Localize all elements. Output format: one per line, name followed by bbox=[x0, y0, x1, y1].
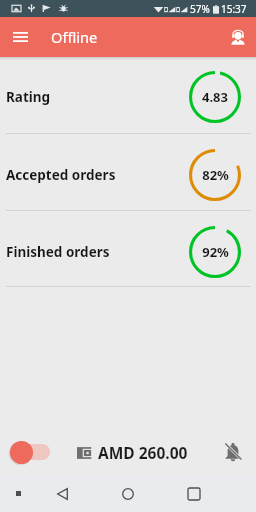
button[interactable]: Accepted orders bbox=[0, 136, 256, 213]
button[interactable]: Recents bbox=[181, 481, 207, 507]
button[interactable]: Home bbox=[115, 481, 141, 507]
staticText: 92% bbox=[202, 243, 229, 261]
staticText: 15:37 bbox=[221, 2, 247, 16]
button[interactable]: Support bbox=[223, 22, 253, 52]
staticText: 4.83 bbox=[202, 88, 228, 106]
button[interactable]: Rating bbox=[0, 58, 256, 135]
button[interactable]: Notifications off bbox=[221, 440, 245, 464]
staticText: 82% bbox=[202, 166, 229, 184]
staticText: Offline bbox=[51, 27, 98, 47]
staticText: 57% bbox=[190, 2, 210, 16]
staticText: Rating bbox=[6, 88, 51, 106]
button[interactable]: Go online bbox=[9, 440, 50, 464]
button[interactable]: Finished orders bbox=[0, 213, 256, 290]
staticText: Accepted orders bbox=[6, 166, 116, 184]
staticText: AMD 260.00 bbox=[98, 442, 188, 463]
button[interactable]: Back bbox=[49, 481, 75, 507]
button[interactable]: Menu bbox=[5, 22, 35, 52]
staticText: Finished orders bbox=[6, 243, 110, 261]
